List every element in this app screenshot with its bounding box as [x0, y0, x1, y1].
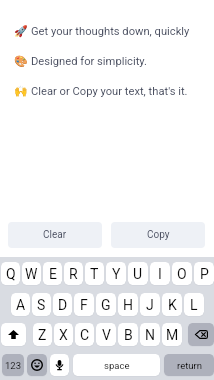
- staticText: B: [124, 327, 133, 343]
- staticText: U: [133, 266, 143, 282]
- button[interactable]: I: [150, 262, 170, 285]
- staticText: Y: [112, 266, 121, 282]
- staticText: C: [80, 327, 90, 343]
- button[interactable]: L: [184, 293, 204, 316]
- button[interactable]: Clear: [8, 222, 102, 248]
- staticText: X: [59, 327, 68, 343]
- button[interactable]: G: [96, 293, 116, 316]
- button[interactable]: 123: [2, 354, 24, 376]
- staticText: S: [37, 297, 46, 313]
- staticText: P: [200, 266, 209, 282]
- button[interactable]: R: [64, 262, 83, 285]
- staticText: A: [16, 297, 26, 313]
- button[interactable]: Dictate: [50, 354, 69, 376]
- staticText: N: [145, 327, 155, 343]
- staticText: Z: [38, 327, 47, 343]
- button[interactable]: Emoji: [27, 354, 47, 376]
- button[interactable]: E: [43, 262, 62, 285]
- staticText: Designed for simplicity.: [31, 55, 148, 68]
- staticText: L: [190, 297, 198, 313]
- staticText: E: [49, 266, 57, 282]
- button[interactable]: Copy: [111, 222, 205, 248]
- staticText: I: [158, 266, 162, 282]
- button[interactable]: Shift: [1, 323, 26, 346]
- button[interactable]: V: [96, 323, 116, 346]
- staticText: J: [146, 297, 154, 313]
- staticText: W: [25, 266, 38, 282]
- staticText: Get your thoughts down, quickly: [31, 25, 190, 38]
- button[interactable]: Q: [1, 262, 20, 285]
- button[interactable]: S: [32, 293, 51, 316]
- button[interactable]: K: [162, 293, 182, 316]
- button[interactable]: A: [11, 293, 30, 316]
- button[interactable]: Backspace: [188, 323, 214, 346]
- button[interactable]: T: [85, 262, 104, 285]
- button[interactable]: Y: [106, 262, 126, 285]
- staticText: 🎨: [14, 55, 28, 68]
- button[interactable]: F: [74, 293, 94, 316]
- staticText: V: [102, 327, 111, 343]
- button[interactable]: C: [75, 323, 94, 346]
- staticText: Clear or Copy your text, that's it.: [31, 85, 188, 98]
- staticText: Copy: [147, 229, 170, 241]
- button[interactable]: return: [164, 354, 214, 376]
- staticText: 🙌: [14, 85, 28, 98]
- staticText: D: [58, 297, 68, 313]
- staticText: F: [80, 297, 88, 313]
- button[interactable]: Z: [33, 323, 52, 346]
- staticText: M: [166, 327, 179, 343]
- button[interactable]: U: [128, 262, 148, 285]
- staticText: O: [177, 266, 187, 282]
- staticText: T: [90, 266, 99, 282]
- button[interactable]: O: [172, 262, 192, 285]
- staticText: G: [101, 297, 111, 313]
- button[interactable]: W: [22, 262, 41, 285]
- button[interactable]: H: [118, 293, 138, 316]
- staticText: 🚀: [14, 25, 28, 38]
- staticText: space: [104, 360, 130, 371]
- button[interactable]: X: [54, 323, 73, 346]
- staticText: 123: [5, 360, 22, 371]
- button[interactable]: N: [140, 323, 160, 346]
- button[interactable]: P: [194, 262, 214, 285]
- button[interactable]: space: [73, 354, 160, 376]
- staticText: return: [177, 360, 202, 371]
- button[interactable]: J: [140, 293, 160, 316]
- staticText: K: [168, 297, 177, 313]
- button[interactable]: B: [118, 323, 138, 346]
- button[interactable]: D: [53, 293, 72, 316]
- staticText: R: [69, 266, 78, 282]
- button[interactable]: M: [162, 323, 182, 346]
- staticText: Q: [6, 266, 16, 282]
- staticText: Clear: [43, 229, 67, 241]
- staticText: H: [123, 297, 133, 313]
